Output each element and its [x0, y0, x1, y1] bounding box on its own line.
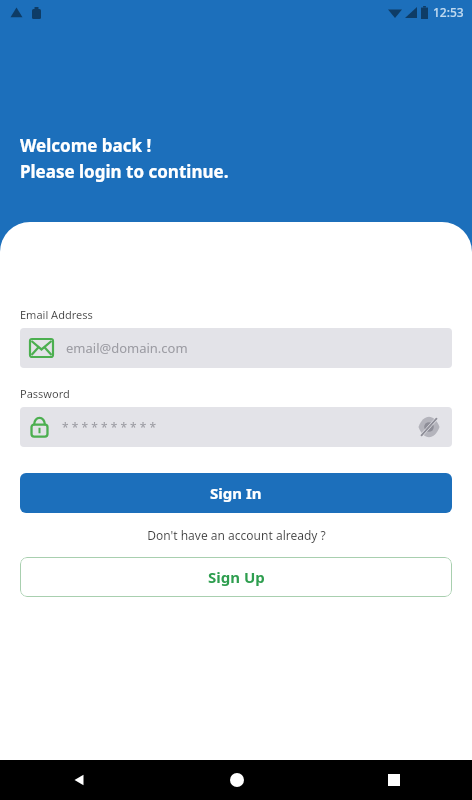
button[interactable]: Show password [414, 412, 444, 442]
staticText: email@domain.com [66, 339, 188, 357]
button[interactable]: * * * * * * * * * * [20, 407, 452, 447]
button[interactable]: email@domain.com [20, 328, 452, 368]
staticText: Welcome back ! [20, 134, 152, 157]
staticText: Password [20, 386, 70, 401]
staticText: Sign In [210, 483, 262, 503]
staticText: 12:53 [433, 4, 464, 20]
staticText: Don't have an account already ? [147, 527, 326, 543]
staticText: * * * * * * * * * * [62, 419, 157, 435]
button[interactable]: Home [158, 760, 315, 800]
staticText: Sign Up [208, 567, 265, 587]
staticText: Please login to continue. [20, 160, 229, 183]
staticText: Email Address [20, 307, 93, 322]
button[interactable]: Sign Up [20, 557, 452, 597]
button[interactable]: Recent apps [315, 760, 472, 800]
button[interactable]: Back [0, 760, 158, 800]
button[interactable]: Sign In [20, 473, 452, 513]
